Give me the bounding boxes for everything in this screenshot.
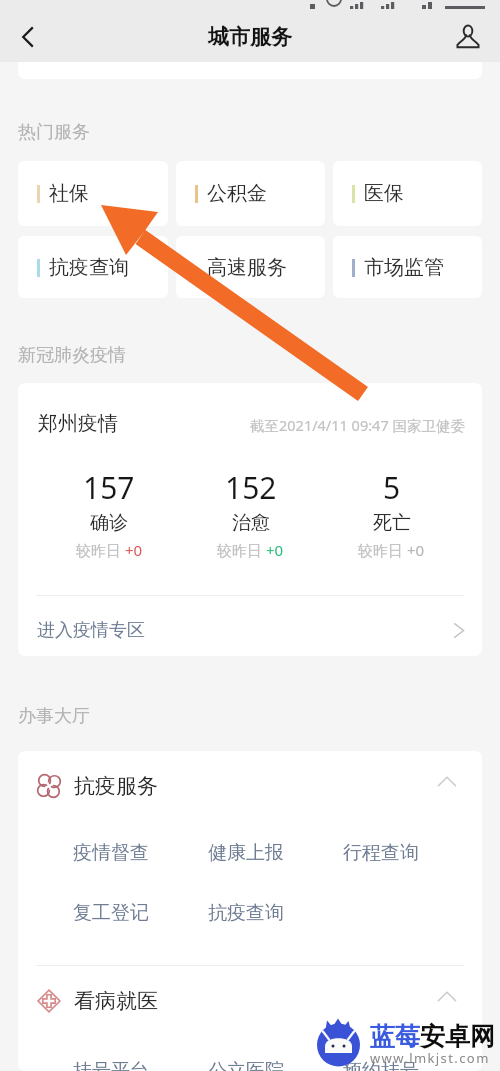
button[interactable]: 抗疫服务: [18, 751, 482, 821]
button[interactable]: 抗疫查询: [208, 901, 284, 925]
staticText: 高速服务: [207, 255, 287, 280]
staticText: 热门服务: [18, 121, 90, 144]
button[interactable]: 高速服务: [176, 236, 325, 298]
staticText: 医保: [364, 181, 404, 206]
staticText: 截至2021/4/11 09:47 国家卫健委: [250, 415, 465, 435]
staticText: 152: [225, 467, 277, 508]
staticText: 进入疫情专区: [37, 619, 145, 642]
staticText: 157: [83, 467, 135, 508]
button[interactable]: 疫情督查: [73, 841, 149, 865]
staticText: 社保: [49, 181, 89, 206]
button[interactable]: 进入疫情专区: [18, 596, 482, 656]
button[interactable]: 行程查询: [343, 841, 419, 865]
staticText: 抗疫服务: [74, 773, 158, 799]
button[interactable]: Back: [5, 14, 51, 60]
button[interactable]: 抗疫查询: [18, 236, 168, 298]
staticText: 市场监管: [364, 255, 444, 280]
staticText: 治愈: [232, 511, 270, 535]
button[interactable]: 公立医院: [208, 1059, 284, 1071]
button[interactable]: 看病就医: [18, 966, 482, 1036]
staticText: 公积金: [207, 181, 267, 206]
button[interactable]: Profile: [445, 13, 491, 59]
button[interactable]: 复工登记: [73, 901, 149, 925]
button[interactable]: 医保: [333, 161, 482, 226]
button[interactable]: 社保: [18, 161, 168, 226]
button[interactable]: 预约挂号: [343, 1059, 419, 1071]
staticText: 办事大厅: [18, 705, 90, 728]
button[interactable]: 市场监管: [333, 236, 482, 298]
staticText: 蓝莓安卓网: [370, 1021, 495, 1052]
staticText: 5: [383, 467, 401, 508]
staticText: 较昨日 +0: [217, 540, 284, 560]
staticText: 郑州疫情: [38, 411, 118, 436]
staticText: 死亡: [373, 511, 411, 535]
staticText: 新冠肺炎疫情: [18, 344, 126, 367]
button[interactable]: 挂号平台: [73, 1059, 149, 1071]
button[interactable]: 公积金: [176, 161, 325, 226]
staticText: 较昨日 +0: [76, 540, 143, 560]
staticText: 城市服务: [208, 24, 292, 50]
staticText: 确诊: [90, 511, 128, 535]
staticText: www.lmkjst.com: [370, 1049, 490, 1067]
staticText: 较昨日 +0: [358, 540, 425, 560]
staticText: 抗疫查询: [49, 255, 129, 280]
staticText: 看病就医: [74, 988, 158, 1014]
button[interactable]: 健康上报: [208, 841, 284, 865]
